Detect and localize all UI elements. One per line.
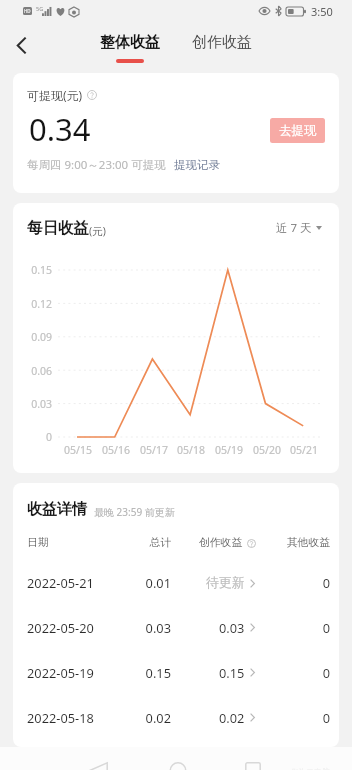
staticText: 0.12 — [22, 297, 52, 311]
staticText: 总计 — [13, 536, 171, 550]
staticText: 0.03 — [13, 619, 171, 636]
button[interactable]: 2022-05-21 — [13, 560, 339, 605]
staticText: 2022-05-19 — [27, 664, 94, 681]
staticText: 近 7 天 — [276, 220, 312, 236]
button[interactable]: Home — [162, 755, 193, 770]
staticText: 05/21 — [288, 443, 320, 457]
staticText: 0.15 — [219, 664, 245, 681]
staticText: 0 — [13, 709, 330, 726]
staticText: 创作收益 — [199, 536, 243, 550]
staticText: 5G — [36, 5, 44, 12]
staticText: 日期 — [27, 536, 49, 550]
staticText: 0.09 — [22, 330, 52, 344]
button[interactable]: 创作收益 — [185, 33, 259, 67]
staticText: 其他收益 — [13, 536, 330, 550]
staticText: 0.01 — [13, 574, 171, 591]
button[interactable]: Back — [83, 755, 114, 770]
staticText: 0.03 — [219, 619, 245, 636]
staticText: 0.02 — [13, 709, 171, 726]
staticText: 05/18 — [175, 443, 207, 457]
staticText: 每周四 9:00～23:00 可提现 — [27, 157, 166, 173]
staticText: 0.03 — [22, 397, 52, 411]
staticText: 收益详情 — [27, 500, 87, 519]
staticText: 2022-05-18 — [27, 709, 94, 726]
staticText: (元) — [89, 224, 106, 238]
staticText: 3:50 — [311, 4, 333, 19]
button[interactable]: 2022-05-18 — [13, 695, 339, 740]
button[interactable]: Recents — [237, 755, 268, 770]
staticText: 0.34 — [29, 108, 91, 150]
staticText: 2022-05-20 — [27, 619, 94, 636]
staticText: 0 — [13, 664, 330, 681]
staticText: 整体收益 — [100, 33, 160, 52]
staticText: 0 — [13, 619, 330, 636]
staticText: 待更新 — [206, 575, 245, 591]
staticText: 去提现 — [279, 123, 317, 139]
staticText: HD — [24, 8, 31, 14]
staticText: 05/15 — [62, 443, 94, 457]
staticText: 华为云电脑 — [290, 767, 330, 770]
staticText: 05/20 — [251, 443, 283, 457]
button[interactable]: 提现记录 — [174, 158, 220, 172]
button[interactable]: Back — [6, 30, 36, 60]
staticText: 0.15 — [22, 263, 52, 277]
staticText: 可提现(元) — [27, 87, 83, 103]
staticText: 创作收益 — [192, 33, 252, 52]
staticText: 0.06 — [22, 364, 52, 378]
staticText: 0.15 — [13, 664, 171, 681]
staticText: 0.02 — [219, 709, 245, 726]
staticText: 0 — [13, 574, 330, 591]
staticText: 05/17 — [138, 443, 170, 457]
button[interactable]: 去提现 — [270, 118, 325, 143]
button[interactable]: 2022-05-19 — [13, 650, 339, 695]
staticText: 每日收益 — [27, 218, 89, 238]
staticText: 0 — [22, 430, 52, 444]
staticText: 2022-05-21 — [27, 574, 94, 591]
button[interactable]: 整体收益 — [93, 33, 167, 67]
staticText: 05/16 — [100, 443, 132, 457]
button[interactable]: 2022-05-20 — [13, 605, 339, 650]
staticText: 05/19 — [213, 443, 245, 457]
button[interactable]: 近 7 天 — [276, 220, 322, 236]
staticText: 最晚 23:59 前更新 — [94, 505, 175, 519]
